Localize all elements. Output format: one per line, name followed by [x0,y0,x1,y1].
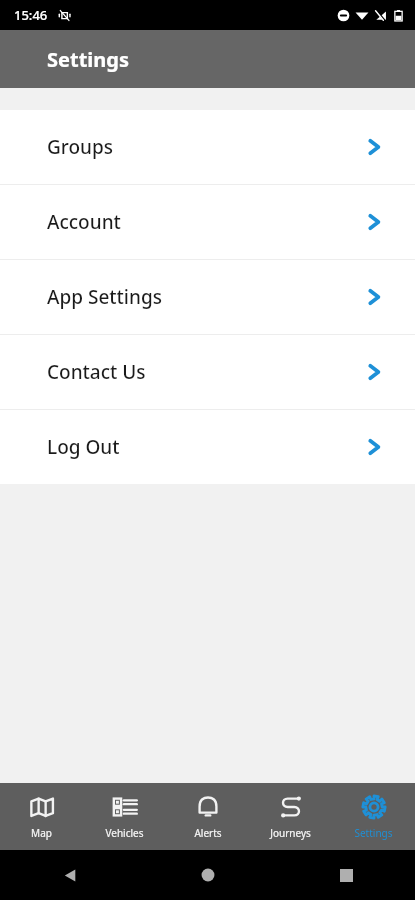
staticText: App Settings [47,284,363,310]
staticText: Map [31,826,52,840]
staticText: Account [47,209,363,235]
button[interactable]: Map [0,787,83,846]
button[interactable]: Groups [0,110,415,184]
button[interactable]: Journeys [249,787,332,846]
button[interactable]: Settings [332,787,415,846]
staticText: Journeys [270,826,311,840]
button[interactable]: Contact Us [0,335,415,409]
button[interactable]: Account [0,185,415,259]
staticText: Settings [354,826,393,840]
staticText: Settings [47,46,129,73]
button[interactable]: Recent apps [324,853,368,897]
button[interactable]: Vehicles [83,787,166,846]
staticText: Log Out [47,434,363,460]
button[interactable]: Home [186,853,230,897]
button[interactable]: App Settings [0,260,415,334]
button[interactable]: Log Out [0,410,415,484]
button[interactable]: Alerts [166,787,249,846]
button[interactable]: Back [48,853,92,897]
staticText: Contact Us [47,359,363,385]
staticText: Vehicles [105,826,144,840]
staticText: Groups [47,134,363,160]
staticText: 15:46 [14,6,48,24]
staticText: Alerts [194,826,222,840]
